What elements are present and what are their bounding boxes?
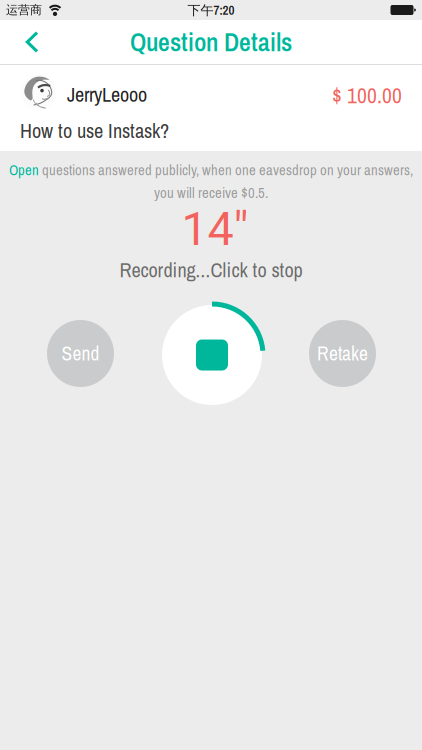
button[interactable]: Stop recording [156, 299, 268, 411]
button[interactable]: Send [47, 320, 114, 387]
staticText: Open [9, 160, 39, 180]
staticText: How to use Instask? [20, 117, 169, 144]
staticText: Retake [317, 340, 368, 367]
staticText: questions answered publicly, when one ea… [39, 160, 413, 180]
button[interactable]: Back [0, 20, 64, 64]
staticText: 14" [181, 202, 248, 256]
staticText: Recording...Click to stop [119, 256, 302, 284]
button[interactable]: Retake [309, 320, 376, 387]
staticText: you will receive $0.5. [154, 183, 268, 203]
staticText: 下午7:20 [187, 1, 234, 19]
staticText: JerryLeooo [67, 81, 147, 108]
staticText: $ 100.00 [332, 81, 402, 110]
staticText: Question Details [130, 25, 292, 59]
staticText: Send [61, 340, 99, 367]
staticText: 运营商 [6, 2, 42, 17]
